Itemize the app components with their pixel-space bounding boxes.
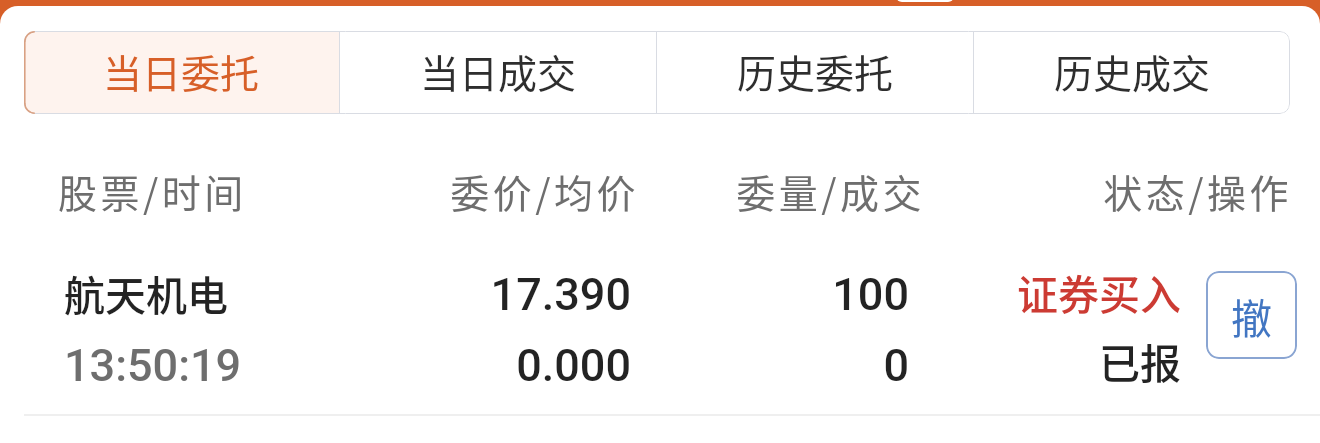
staticText: 历史委托 bbox=[737, 43, 894, 99]
staticText: 委量/成交 bbox=[680, 163, 925, 219]
staticText: 委价/均价 bbox=[400, 163, 639, 219]
button[interactable]: 历史委托 bbox=[657, 31, 973, 114]
staticText: 证券买入 bbox=[960, 262, 1181, 321]
staticText: 0.000 bbox=[400, 339, 631, 392]
staticText: 状态/操作 bbox=[1000, 163, 1292, 219]
button[interactable]: 当日委托 bbox=[24, 31, 339, 114]
staticText: 已报 bbox=[960, 331, 1181, 390]
button[interactable]: 航天机电 bbox=[0, 236, 1320, 414]
staticText: 100 bbox=[700, 268, 909, 321]
staticText: 13:50:19 bbox=[64, 339, 403, 392]
staticText: 撤 bbox=[1231, 286, 1272, 345]
staticText: 股票/时间 bbox=[58, 163, 400, 219]
staticText: 17.390 bbox=[400, 268, 631, 321]
staticText: 航天机电 bbox=[64, 263, 400, 322]
button[interactable]: 当日成交 bbox=[340, 31, 656, 114]
staticText: 历史成交 bbox=[1054, 43, 1211, 99]
staticText: 当日委托 bbox=[103, 43, 260, 99]
staticText: 0 bbox=[700, 339, 909, 392]
button[interactable]: 撤单 Cancel order bbox=[1206, 271, 1297, 359]
button[interactable]: 历史成交 bbox=[974, 31, 1290, 114]
staticText: 当日成交 bbox=[420, 43, 577, 99]
